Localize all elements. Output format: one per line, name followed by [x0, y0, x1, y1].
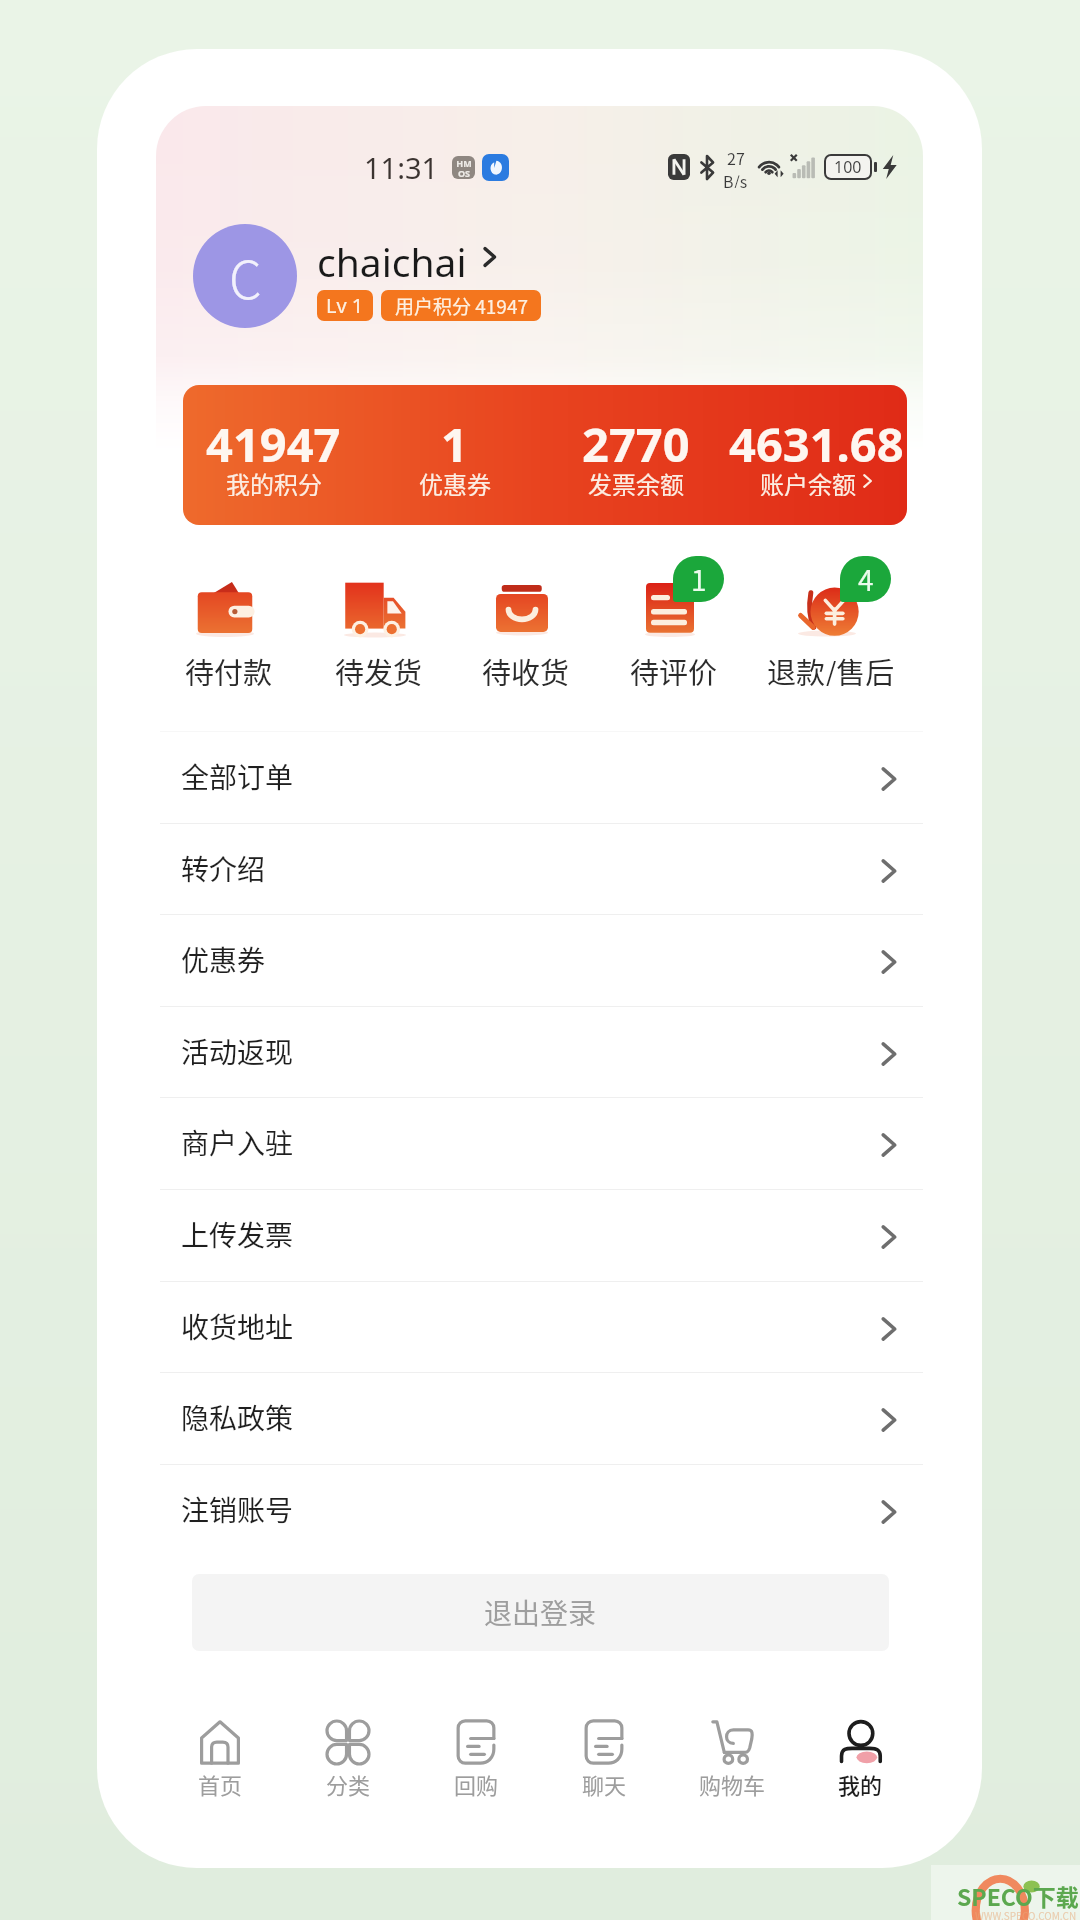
button[interactable]: 回购 [412, 1701, 540, 1811]
button[interactable]: 优惠券 [156, 914, 923, 1005]
staticText: 待评价 [630, 650, 718, 686]
staticText: 待付款 [185, 650, 273, 686]
staticText: C [229, 239, 262, 314]
staticText: 待发货 [335, 650, 423, 686]
staticText: WWW.SPECO.COM.CN [975, 1908, 1077, 1920]
staticText: 用户积分 41947 [395, 292, 528, 320]
staticText: 回购 [454, 1768, 499, 1798]
staticText: 转介绍 [181, 848, 266, 889]
button[interactable]: 退款/售后 [757, 550, 905, 680]
button[interactable]: 注销账号 [156, 1464, 923, 1555]
staticText: Lv 1 [326, 292, 364, 319]
staticText: 隐私政策 [181, 1397, 294, 1438]
staticText: 注销账号 [181, 1489, 294, 1530]
staticText: 优惠券 [419, 466, 491, 496]
staticText: 我的 [838, 1768, 883, 1798]
button[interactable]: 购物车 [668, 1701, 796, 1811]
button[interactable]: 我的 [796, 1701, 923, 1811]
button[interactable]: 首页 [156, 1701, 284, 1811]
staticText: 分类 [326, 1768, 371, 1798]
button[interactable]: 全部订单 [156, 731, 923, 822]
staticText: 1 [691, 559, 707, 600]
button[interactable]: 转介绍 [156, 823, 923, 914]
staticText: 4631.68 [729, 412, 904, 470]
staticText: 优惠券 [181, 939, 266, 980]
button[interactable]: 待收货 [452, 550, 600, 680]
staticText: 发票余额 [588, 466, 684, 496]
staticText: 我的积分 [226, 466, 322, 496]
button[interactable]: 活动返现 [156, 1006, 923, 1097]
button[interactable]: 待评价 [600, 550, 748, 680]
button[interactable]: 41947 [183, 385, 907, 525]
button[interactable]: 退出登录 [192, 1574, 889, 1651]
staticText: 100 [834, 156, 862, 178]
button[interactable]: Lv 1 [317, 290, 373, 321]
staticText: 首页 [198, 1768, 243, 1798]
button[interactable]: 隐私政策 [156, 1372, 923, 1463]
staticText: 27 [727, 146, 745, 169]
staticText: 聊天 [582, 1768, 627, 1798]
staticText: 退出登录 [484, 1592, 597, 1633]
button[interactable]: 用户积分 41947 [381, 290, 541, 321]
staticText: HM OS [456, 157, 472, 179]
staticText: 商户入驻 [181, 1122, 294, 1163]
staticText: 4 [858, 559, 874, 600]
button[interactable]: chaichai [317, 235, 499, 279]
button[interactable]: 待付款 [156, 550, 303, 680]
button[interactable]: 收货地址 [156, 1281, 923, 1372]
button[interactable]: 聊天 [540, 1701, 668, 1811]
staticText: B/s [723, 169, 748, 188]
staticText: 账户余额 [760, 466, 856, 496]
button[interactable]: 商户入驻 [156, 1097, 923, 1188]
staticText: chaichai [317, 235, 467, 279]
staticText: 2770 [582, 412, 690, 470]
button[interactable]: Avatar [193, 224, 297, 328]
staticText: 活动返现 [181, 1031, 294, 1072]
staticText: 待收货 [482, 650, 570, 686]
button[interactable]: 待发货 [305, 550, 453, 680]
staticText: 41947 [206, 412, 341, 470]
staticText: SPECO下载 [957, 1879, 1079, 1912]
button[interactable]: 上传发票 [156, 1189, 923, 1280]
staticText: 收货地址 [181, 1306, 294, 1347]
button[interactable]: 分类 [284, 1701, 412, 1811]
staticText: 11:31 [364, 148, 439, 187]
staticText: 上传发票 [181, 1214, 294, 1255]
staticText: 退款/售后 [767, 650, 895, 686]
staticText: 购物车 [699, 1768, 766, 1798]
staticText: 全部订单 [181, 756, 294, 797]
staticText: 1 [441, 412, 468, 470]
